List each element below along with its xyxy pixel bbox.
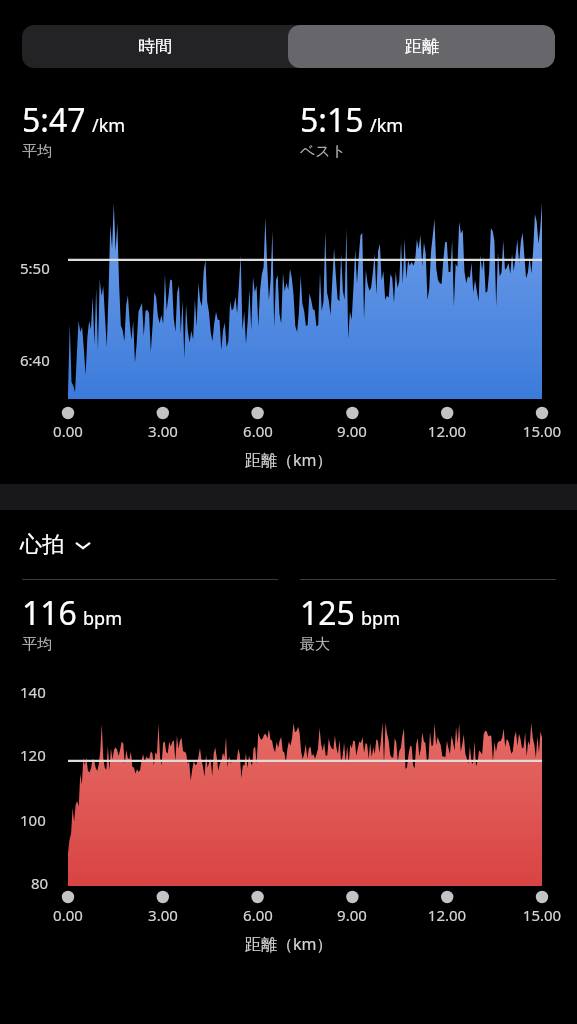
button[interactable]: 心拍	[20, 531, 93, 559]
staticText: 15.00	[510, 905, 574, 925]
staticText: /km	[370, 113, 404, 138]
staticText: 3.00	[131, 421, 195, 441]
other: Expand heart rate	[73, 535, 93, 555]
staticText: 12.00	[415, 905, 479, 925]
staticText: 9.00	[320, 905, 384, 925]
staticText: 0.00	[36, 421, 100, 441]
button[interactable]: 距離	[288, 25, 555, 68]
staticText: 5:50	[20, 258, 50, 278]
staticText: 平均	[22, 142, 52, 161]
staticText: 15.00	[510, 421, 574, 441]
staticText: 6:40	[20, 350, 50, 370]
staticText: 3.00	[131, 905, 195, 925]
staticText: 最大	[300, 635, 330, 654]
staticText: /km	[92, 113, 126, 138]
staticText: 80	[31, 873, 49, 893]
staticText: 時間	[138, 36, 172, 57]
staticText: 6.00	[226, 905, 290, 925]
staticText: 距離（km）	[245, 933, 333, 955]
button[interactable]: 時間	[22, 25, 288, 68]
staticText: 125	[300, 591, 355, 635]
staticText: 5:15	[300, 98, 364, 142]
staticText: 距離	[405, 36, 439, 57]
staticText: 心拍	[20, 531, 64, 559]
staticText: 6.00	[226, 421, 290, 441]
staticText: 120	[20, 745, 46, 765]
staticText: bpm	[83, 606, 122, 631]
staticText: 116	[22, 591, 77, 635]
staticText: 平均	[22, 635, 52, 654]
staticText: 0.00	[36, 905, 100, 925]
staticText: bpm	[361, 606, 400, 631]
staticText: 9.00	[320, 421, 384, 441]
staticText: 12.00	[415, 421, 479, 441]
staticText: 5:47	[22, 98, 86, 142]
staticText: 距離（km）	[245, 449, 333, 471]
staticText: 100	[20, 810, 46, 830]
staticText: ベスト	[300, 142, 347, 161]
staticText: 140	[20, 682, 46, 702]
